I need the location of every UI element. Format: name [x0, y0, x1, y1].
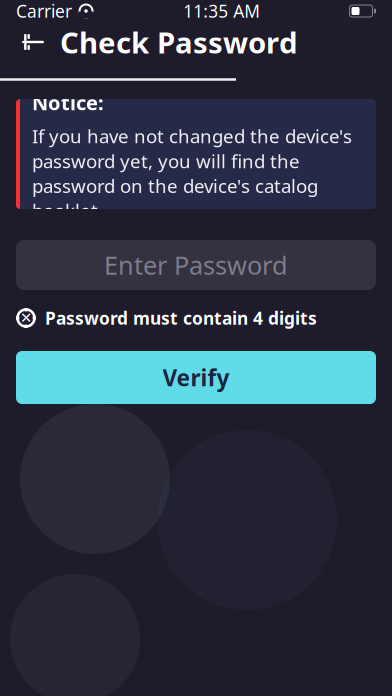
staticText: Enter Password: [104, 248, 288, 282]
staticText: Password must contain 4 digits: [45, 306, 317, 329]
button[interactable]: Back: [16, 24, 50, 60]
staticText: ✕: [20, 310, 32, 326]
staticText: Notice:: [32, 89, 104, 116]
staticText: Check Password: [60, 22, 298, 61]
button[interactable]: Verify: [16, 351, 376, 404]
staticText: Carrier: [16, 0, 72, 22]
staticText: If you have not changed the device's pas…: [32, 124, 352, 223]
staticText: Verify: [162, 362, 229, 392]
button[interactable]: Enter Password: [16, 240, 376, 290]
staticText: 11:35 AM: [183, 0, 260, 22]
